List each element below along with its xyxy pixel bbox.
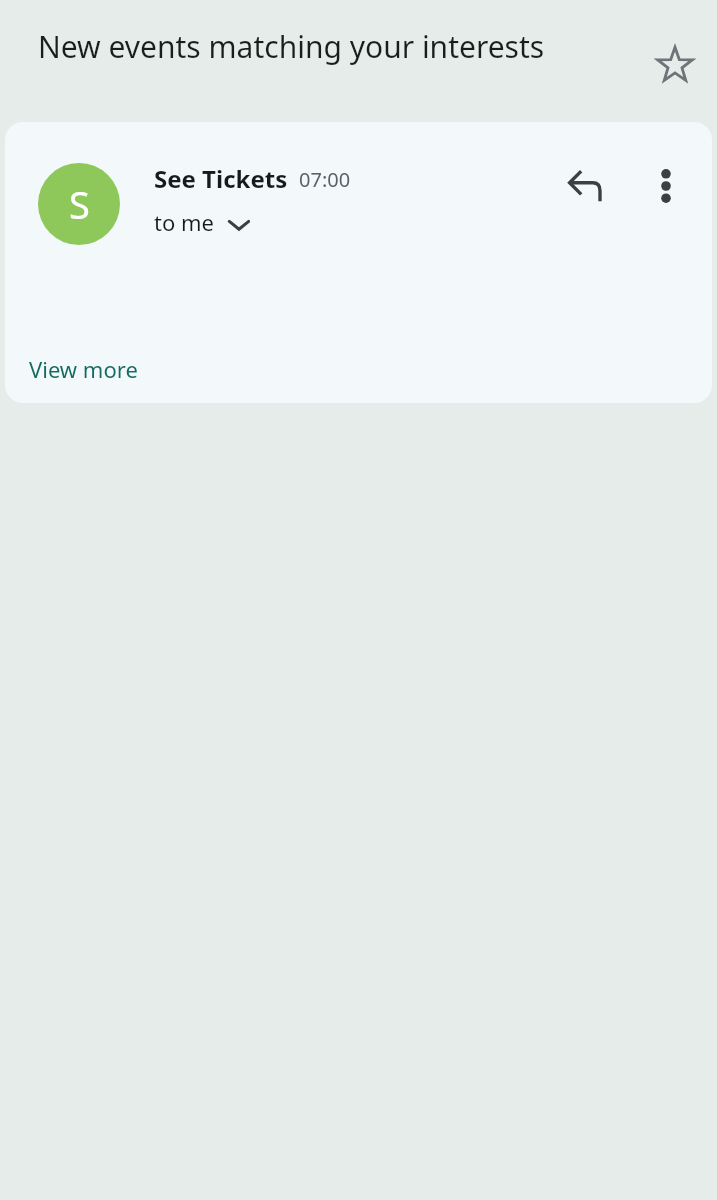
button[interactable]: Star bbox=[644, 34, 706, 96]
staticText: New events matching your interests bbox=[38, 26, 618, 67]
staticText: 07:00 bbox=[299, 166, 351, 193]
staticText: to me bbox=[154, 207, 214, 237]
button[interactable]: to me bbox=[154, 207, 250, 237]
button[interactable]: Sender avatar bbox=[38, 163, 120, 245]
staticText: View more bbox=[29, 354, 138, 384]
button[interactable]: More options bbox=[638, 158, 694, 214]
button[interactable]: Reply bbox=[560, 158, 616, 214]
staticText: See Tickets bbox=[154, 162, 288, 195]
staticText: S bbox=[69, 178, 90, 230]
button[interactable]: View more bbox=[21, 346, 146, 392]
